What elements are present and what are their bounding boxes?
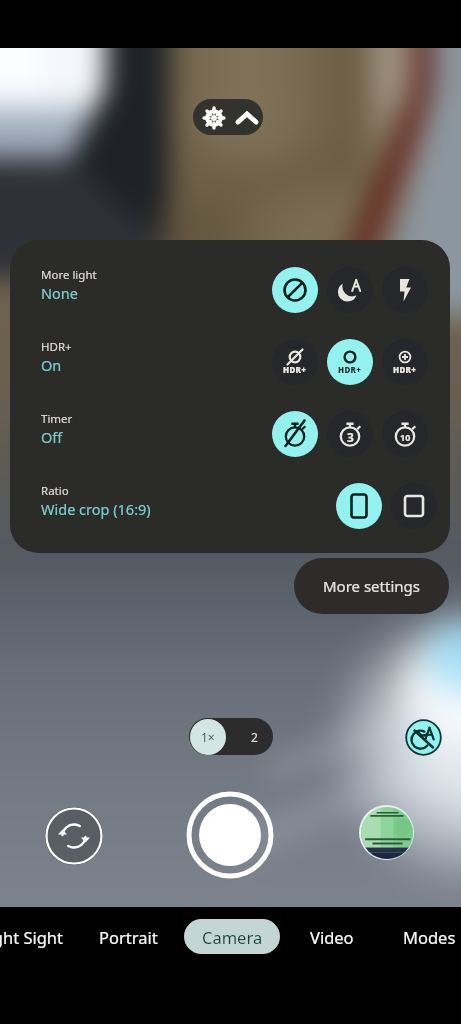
button[interactable]: HDR+ enhanced xyxy=(382,339,428,385)
button[interactable]: Timer off xyxy=(272,411,318,457)
button[interactable]: Modes xyxy=(403,919,456,954)
staticText: Timer xyxy=(41,411,73,427)
staticText: 2 xyxy=(251,729,258,745)
button[interactable]: HDR+ on xyxy=(327,339,373,385)
staticText: Wide crop (16:9) xyxy=(41,499,151,519)
staticText: Off xyxy=(41,427,63,447)
button[interactable]: Switch camera xyxy=(45,807,103,865)
button[interactable]: 1× xyxy=(190,719,226,755)
staticText: More light xyxy=(41,267,97,283)
staticText: Night Sight xyxy=(0,926,64,948)
staticText: On xyxy=(41,355,62,375)
staticText: HDR+ xyxy=(393,364,417,375)
staticText: Video xyxy=(310,926,354,948)
staticText: More settings xyxy=(323,576,420,596)
button[interactable]: Camera xyxy=(184,919,280,954)
button[interactable]: Video xyxy=(310,919,354,954)
button[interactable]: 10 second timer xyxy=(382,411,428,457)
button[interactable]: 3 second timer xyxy=(327,411,373,457)
button[interactable]: Last photo xyxy=(359,805,414,860)
button[interactable]: No extra light xyxy=(272,267,318,313)
button[interactable]: Auto night xyxy=(327,267,373,313)
button[interactable]: Night Sight auto off xyxy=(405,719,442,756)
staticText: 3 xyxy=(347,429,354,445)
button[interactable]: Shutter xyxy=(187,792,273,878)
button[interactable]: Portrait xyxy=(99,919,158,954)
button[interactable]: Flash on xyxy=(382,267,428,313)
staticText: 1× xyxy=(201,729,215,745)
staticText: HDR+ xyxy=(338,364,362,375)
staticText: HDR+ xyxy=(283,364,307,375)
button[interactable]: More settings xyxy=(294,558,449,614)
button[interactable]: Wide crop 16:9 xyxy=(336,483,382,529)
staticText: Camera xyxy=(202,926,263,948)
staticText: Modes xyxy=(403,926,456,948)
button[interactable]: Full ratio xyxy=(391,483,437,529)
button[interactable]: HDR+ off xyxy=(272,339,318,385)
staticText: Portrait xyxy=(99,926,158,948)
staticText: None xyxy=(41,283,78,303)
staticText: 10 xyxy=(400,431,411,443)
button[interactable]: Camera settings xyxy=(193,99,263,135)
button[interactable]: Night Sight xyxy=(0,919,64,954)
button[interactable]: 2 xyxy=(235,718,273,755)
staticText: Ratio xyxy=(41,483,69,499)
staticText: HDR+ xyxy=(41,339,72,355)
